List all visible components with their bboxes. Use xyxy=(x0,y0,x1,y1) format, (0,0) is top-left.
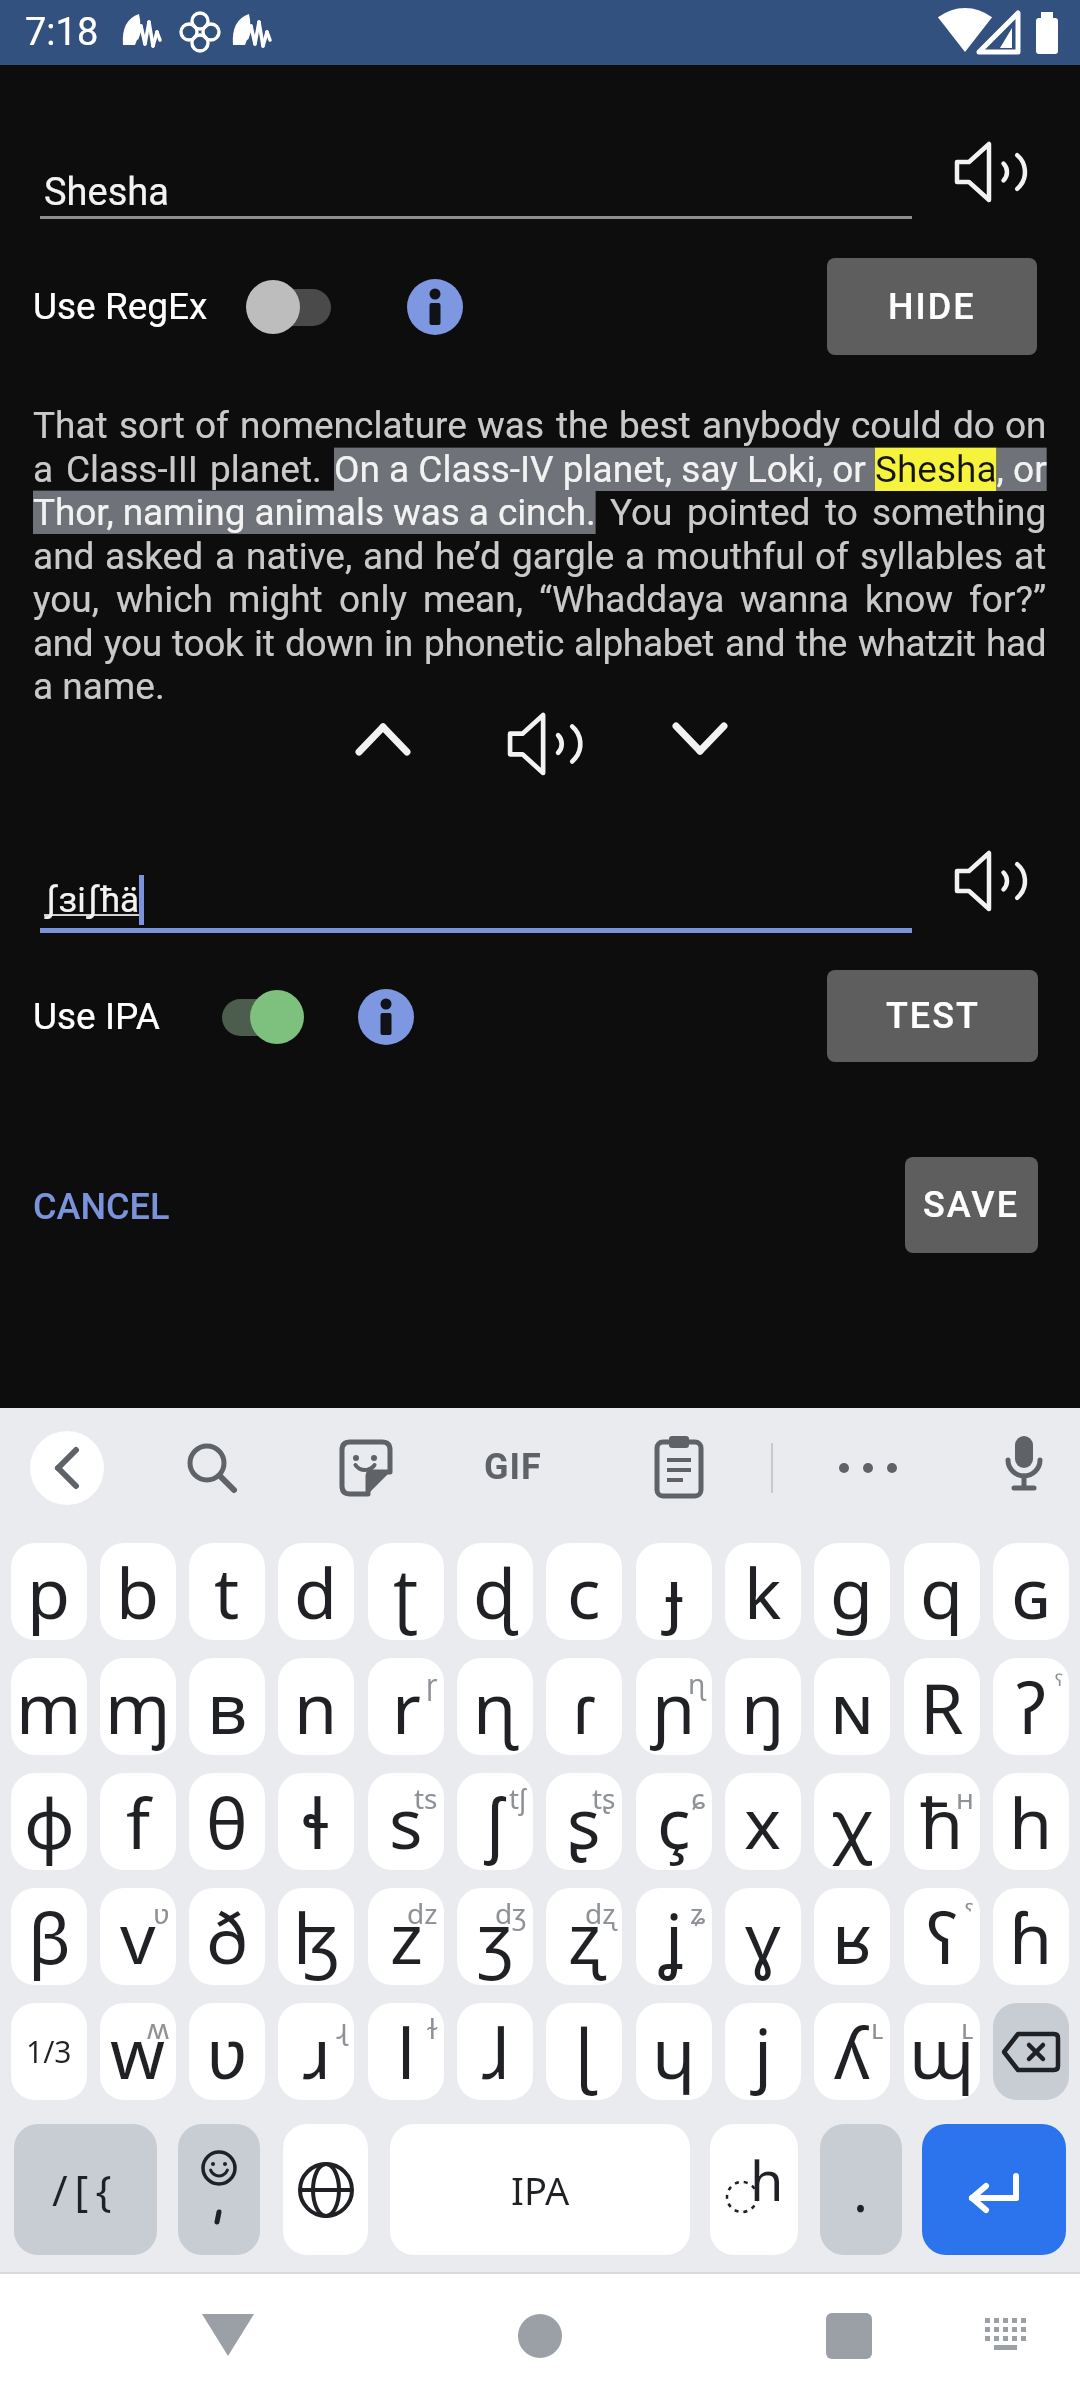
button[interactable]: ɺ xyxy=(457,2003,533,2100)
button[interactable]: ɱ xyxy=(100,1658,176,1755)
button[interactable]: ʂ xyxy=(546,1773,622,1870)
button[interactable] xyxy=(985,2318,1029,2354)
button[interactable]: 1/3 xyxy=(11,2003,87,2100)
button[interactable]: j xyxy=(725,2003,801,2100)
button[interactable]: ɳ xyxy=(457,1658,533,1755)
button[interactable]: x xyxy=(725,1773,801,1870)
staticText: mean, xyxy=(423,578,523,621)
button[interactable]: SAVE xyxy=(905,1157,1038,1253)
button[interactable]: θ xyxy=(189,1773,265,1870)
button[interactable]: ʋ xyxy=(189,2003,265,2100)
button[interactable]: CANCEL xyxy=(33,1186,170,1228)
button[interactable] xyxy=(517,2313,563,2359)
button[interactable] xyxy=(245,279,348,335)
button[interactable] xyxy=(834,1460,904,1476)
staticText: ʐ xyxy=(568,1889,601,1984)
button[interactable]: ɬ xyxy=(278,1773,354,1870)
button[interactable]: ʃ xyxy=(457,1773,533,1870)
button[interactable] xyxy=(955,851,1015,911)
button[interactable] xyxy=(30,1431,104,1505)
button[interactable] xyxy=(955,142,1015,202)
staticText: ɣ xyxy=(745,1889,781,1984)
button[interactable] xyxy=(994,1434,1054,1494)
button[interactable]: ʈ xyxy=(368,1543,444,1640)
button[interactable]: ɲ xyxy=(636,1658,712,1755)
button[interactable]: n xyxy=(278,1658,354,1755)
button[interactable]: ŋ xyxy=(725,1658,801,1755)
button[interactable]: ʝ xyxy=(636,1888,712,1985)
button[interactable]: ɴ xyxy=(814,1658,890,1755)
button[interactable]: ʁ xyxy=(814,1888,890,1985)
button[interactable]: v xyxy=(100,1888,176,1985)
button[interactable] xyxy=(662,708,738,770)
button[interactable] xyxy=(508,713,570,775)
button[interactable]: GIF xyxy=(484,1446,542,1488)
button[interactable] xyxy=(334,1436,398,1500)
button[interactable]: f xyxy=(100,1773,176,1870)
button[interactable]: β xyxy=(11,1888,87,1985)
button[interactable]: ɣ xyxy=(725,1888,801,1985)
button[interactable]: HIDE xyxy=(827,258,1037,355)
button[interactable]: TEST xyxy=(827,970,1038,1062)
staticText: TEST xyxy=(886,995,980,1037)
button[interactable] xyxy=(407,279,463,335)
staticText: You xyxy=(610,491,673,534)
button[interactable]: ɰ xyxy=(904,2003,980,2100)
button[interactable]: R xyxy=(904,1658,980,1755)
button[interactable] xyxy=(345,708,421,770)
button[interactable]: k xyxy=(725,1543,801,1640)
button[interactable]: ʙ xyxy=(189,1658,265,1755)
button[interactable]: ɹ xyxy=(278,2003,354,2100)
button[interactable]: . xyxy=(820,2124,902,2255)
button[interactable] xyxy=(922,2124,1066,2255)
button[interactable] xyxy=(283,2124,368,2255)
button[interactable]: ʔ xyxy=(993,1658,1069,1755)
button[interactable]: l xyxy=(368,2003,444,2100)
button[interactable]: r xyxy=(368,1658,444,1755)
staticText: to xyxy=(825,491,858,534)
button[interactable]: q xyxy=(904,1543,980,1640)
button[interactable] xyxy=(647,1436,711,1500)
staticText: g xyxy=(830,1544,874,1639)
button[interactable]: ç xyxy=(636,1773,712,1870)
button[interactable]: ɖ xyxy=(457,1543,533,1640)
button[interactable]: ħ xyxy=(904,1773,980,1870)
button[interactable]: ʐ xyxy=(546,1888,622,1985)
button[interactable]: ð xyxy=(189,1888,265,1985)
button[interactable]: h xyxy=(710,2124,798,2255)
button[interactable]: g xyxy=(814,1543,890,1640)
button[interactable]: t xyxy=(189,1543,265,1640)
button[interactable]: w xyxy=(100,2003,176,2100)
button[interactable] xyxy=(178,2124,260,2255)
button[interactable]: ɾ xyxy=(546,1658,622,1755)
button[interactable]: m xyxy=(11,1658,87,1755)
button[interactable]: ʕ xyxy=(904,1888,980,1985)
button[interactable]: ɦ xyxy=(993,1888,1069,1985)
button[interactable]: ʎ xyxy=(814,2003,890,2100)
button[interactable]: χ xyxy=(814,1773,890,1870)
button[interactable]: ɮ xyxy=(278,1888,354,1985)
button[interactable]: ɥ xyxy=(636,2003,712,2100)
button[interactable] xyxy=(358,989,414,1045)
button[interactable]: /[{ xyxy=(14,2124,157,2255)
button[interactable] xyxy=(993,2003,1069,2100)
button[interactable] xyxy=(200,2310,256,2360)
button[interactable]: d xyxy=(278,1543,354,1640)
button[interactable]: ʒ xyxy=(457,1888,533,1985)
button[interactable]: c xyxy=(546,1543,622,1640)
button[interactable]: p xyxy=(11,1543,87,1640)
button[interactable]: ɟ xyxy=(636,1543,712,1640)
button[interactable]: b xyxy=(100,1543,176,1640)
button[interactable]: ɸ xyxy=(11,1773,87,1870)
button[interactable]: ɢ xyxy=(993,1543,1069,1640)
staticText: ts xyxy=(414,1779,438,1817)
button[interactable]: h xyxy=(993,1773,1069,1870)
button[interactable]: z xyxy=(368,1888,444,1985)
button[interactable]: s xyxy=(368,1773,444,1870)
button[interactable] xyxy=(826,2313,872,2359)
button[interactable]: ɭ xyxy=(546,2003,622,2100)
button[interactable]: IPA xyxy=(390,2124,690,2255)
button[interactable] xyxy=(180,1436,244,1500)
staticText: p xyxy=(27,1544,71,1639)
button[interactable] xyxy=(249,989,360,1045)
